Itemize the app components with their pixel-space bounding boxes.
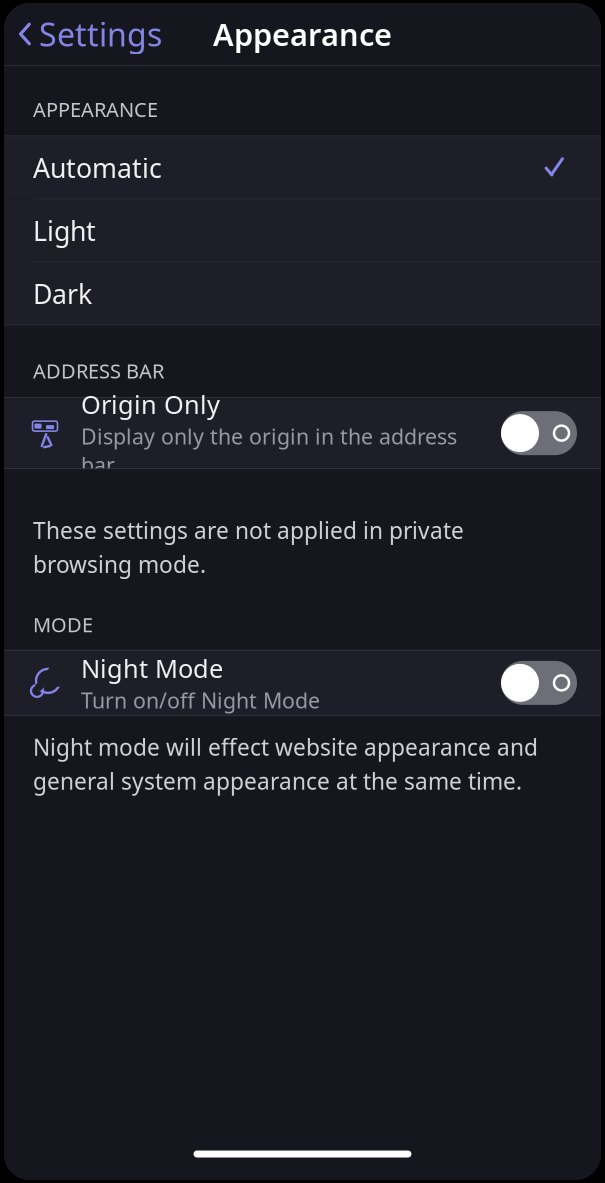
button[interactable]: Light <box>4 200 601 262</box>
staticText: Display only the origin in the address b… <box>81 422 457 479</box>
button[interactable]: Dark <box>4 263 601 325</box>
staticText: Night Mode <box>81 651 223 685</box>
staticText: These settings are not applied in privat… <box>33 515 464 579</box>
staticText: Settings <box>39 13 162 55</box>
button[interactable]: Night Mode <box>4 651 601 715</box>
staticText: Light <box>33 213 96 248</box>
button[interactable]: Origin Only <box>4 398 601 468</box>
staticText: ADDRESS BAR <box>33 358 164 384</box>
staticText: Turn on/off Night Mode <box>81 686 320 714</box>
staticText: MODE <box>33 611 93 638</box>
button[interactable]: Automatic <box>4 137 601 199</box>
staticText: Night mode will effect website appearanc… <box>33 732 538 796</box>
staticText: Dark <box>33 276 92 311</box>
staticText: Origin Only <box>81 387 220 421</box>
button[interactable]: Settings <box>4 3 162 65</box>
staticText: Automatic <box>33 150 162 185</box>
staticText: APPEARANCE <box>33 96 158 123</box>
staticText: Appearance <box>213 14 392 54</box>
